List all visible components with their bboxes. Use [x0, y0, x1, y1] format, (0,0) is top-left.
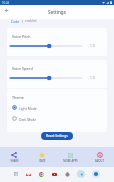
staticText: enabled: [25, 19, 37, 23]
staticText: ABOUT: [95, 159, 104, 163]
button[interactable]: Reset Settings: [41, 132, 73, 140]
staticText: Theme: [12, 95, 24, 100]
staticText: RATE: [39, 159, 46, 163]
button[interactable]: App: [63, 170, 71, 178]
button[interactable]: Light Mode: [7, 103, 107, 112]
staticText: Code: [11, 19, 20, 23]
staticText: 10:24: [2, 1, 10, 5]
staticText: 1.0: [90, 44, 95, 48]
button[interactable]: App: [12, 170, 20, 178]
staticText: 1.0: [90, 76, 95, 80]
staticText: Light Mode: [19, 106, 37, 110]
button[interactable]: MORE APPS: [56, 147, 85, 167]
button[interactable]: ABOUT: [85, 147, 114, 167]
staticText: SHARE: [10, 159, 19, 163]
button[interactable]: App: [50, 170, 58, 178]
button[interactable]: Dark Mode: [7, 114, 107, 123]
staticText: Dark Mode: [19, 117, 37, 121]
button[interactable]: App: [92, 170, 100, 178]
button[interactable]: Back: [2, 6, 11, 15]
button[interactable]: Voice Speed: [7, 60, 107, 88]
staticText: MORE APPS: [63, 159, 78, 163]
button[interactable]: Voice Pitch: [7, 28, 107, 56]
button[interactable]: App: [24, 170, 32, 178]
staticText: Voice Speed: [12, 66, 33, 71]
staticText: Voice Pitch: [12, 34, 31, 39]
button[interactable]: SHARE: [0, 147, 28, 167]
staticText: Reset Settings: [46, 134, 68, 138]
button[interactable]: App: [77, 170, 85, 178]
button[interactable]: RATE: [28, 147, 56, 167]
button[interactable]: App: [37, 170, 45, 178]
staticText: Settings: [48, 9, 66, 15]
